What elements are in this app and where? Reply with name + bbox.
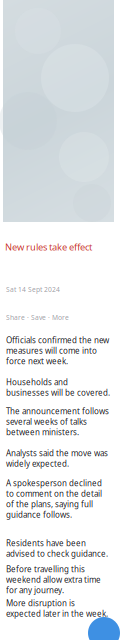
staticText: More disruption is (6, 598, 75, 608)
staticText: businesses will be covered. (6, 387, 110, 398)
staticText: New rules take effect (5, 241, 92, 253)
staticText: of the plans, saying full (6, 499, 93, 509)
button[interactable]: New rules take effect (5, 240, 109, 254)
staticText: force next week. (6, 356, 68, 366)
staticText: A spokesperson declined (6, 478, 102, 488)
staticText: widely expected. (6, 458, 69, 469)
staticText: for any journey. (6, 585, 64, 595)
staticText: Share · Save · More (6, 313, 69, 322)
staticText: Households and (6, 377, 68, 387)
staticText: Analysts said the move was (6, 448, 108, 458)
staticText: to comment on the detail (6, 488, 102, 499)
staticText: weekend allow extra time (6, 574, 101, 585)
button[interactable]: Compose (88, 617, 120, 640)
staticText: Sat 14 Sept 2024 (6, 285, 60, 294)
staticText: Residents have been (6, 538, 86, 548)
staticText: several weeks of talks (6, 416, 87, 427)
staticText: The announcement follows (6, 406, 109, 416)
staticText: between ministers. (6, 427, 79, 437)
staticText: expected later in the week. (6, 608, 108, 619)
staticText: Before travelling this (6, 564, 85, 574)
staticText: guidance follows. (6, 509, 72, 520)
staticText: Officials confirmed the new (6, 335, 109, 345)
staticText: measures will come into (6, 345, 97, 356)
staticText: advised to check guidance. (6, 548, 108, 559)
